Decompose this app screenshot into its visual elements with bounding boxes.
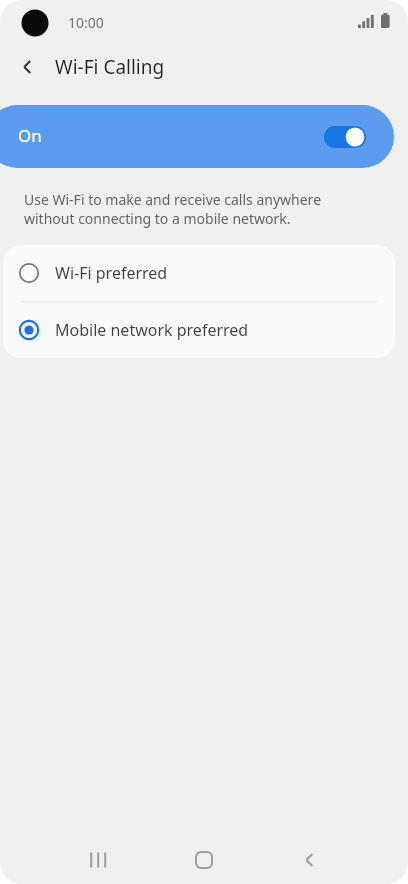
staticText: Wi-Fi preferred (55, 262, 168, 284)
button[interactable]: Home (182, 838, 226, 882)
button[interactable]: On (0, 105, 394, 168)
staticText: Use Wi-Fi to make and receive calls anyw… (24, 190, 369, 228)
button[interactable]: Wi-Fi preferred (3, 245, 395, 301)
staticText: 10:00 (68, 13, 104, 32)
button[interactable]: Recent apps (76, 838, 120, 882)
staticText: Mobile network preferred (55, 319, 249, 341)
button[interactable]: Back (6, 45, 50, 89)
button[interactable]: Back (288, 838, 332, 882)
button[interactable]: Mobile network preferred (3, 302, 395, 358)
staticText: On (18, 124, 42, 147)
staticText: Wi-Fi Calling (55, 54, 165, 80)
